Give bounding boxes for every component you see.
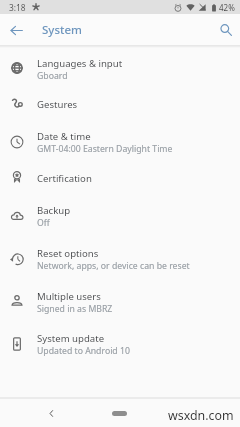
button[interactable]: System update <box>0 320 240 363</box>
staticText: 3:18 <box>9 2 26 13</box>
button[interactable]: Languages & input <box>0 45 240 87</box>
staticText: 42% <box>219 2 235 13</box>
staticText: Multiple users <box>37 290 101 303</box>
button[interactable]: Date & time <box>0 118 240 161</box>
button[interactable]: Certification <box>0 161 240 192</box>
staticText: Reset options <box>37 247 99 260</box>
staticText: Gestures <box>37 98 78 111</box>
staticText: Languages & input <box>37 57 123 70</box>
button[interactable]: Back <box>42 404 60 422</box>
button[interactable]: Gestures <box>0 87 240 118</box>
button[interactable]: Reset options <box>0 235 240 278</box>
button[interactable]: Back <box>3 17 29 43</box>
staticText: Date & time <box>37 130 91 143</box>
staticText: Backup <box>37 204 71 217</box>
staticText: System <box>42 22 82 38</box>
button[interactable]: Search <box>216 20 236 40</box>
staticText: wsxdn.com <box>168 407 234 424</box>
staticText: Gboard <box>37 70 68 82</box>
staticText: Certification <box>37 172 92 185</box>
staticText: GMT-04:00 Eastern Daylight Time <box>37 143 173 155</box>
button[interactable]: Home <box>112 411 127 416</box>
button[interactable]: Backup <box>0 192 240 235</box>
staticText: Updated to Android 10 <box>37 345 130 357</box>
button[interactable]: Multiple users <box>0 278 240 320</box>
staticText: Off <box>37 217 50 229</box>
staticText: Network, apps, or device can be reset <box>37 260 190 272</box>
staticText: Signed in as MBRZ <box>37 303 113 315</box>
staticText: System update <box>37 332 105 345</box>
